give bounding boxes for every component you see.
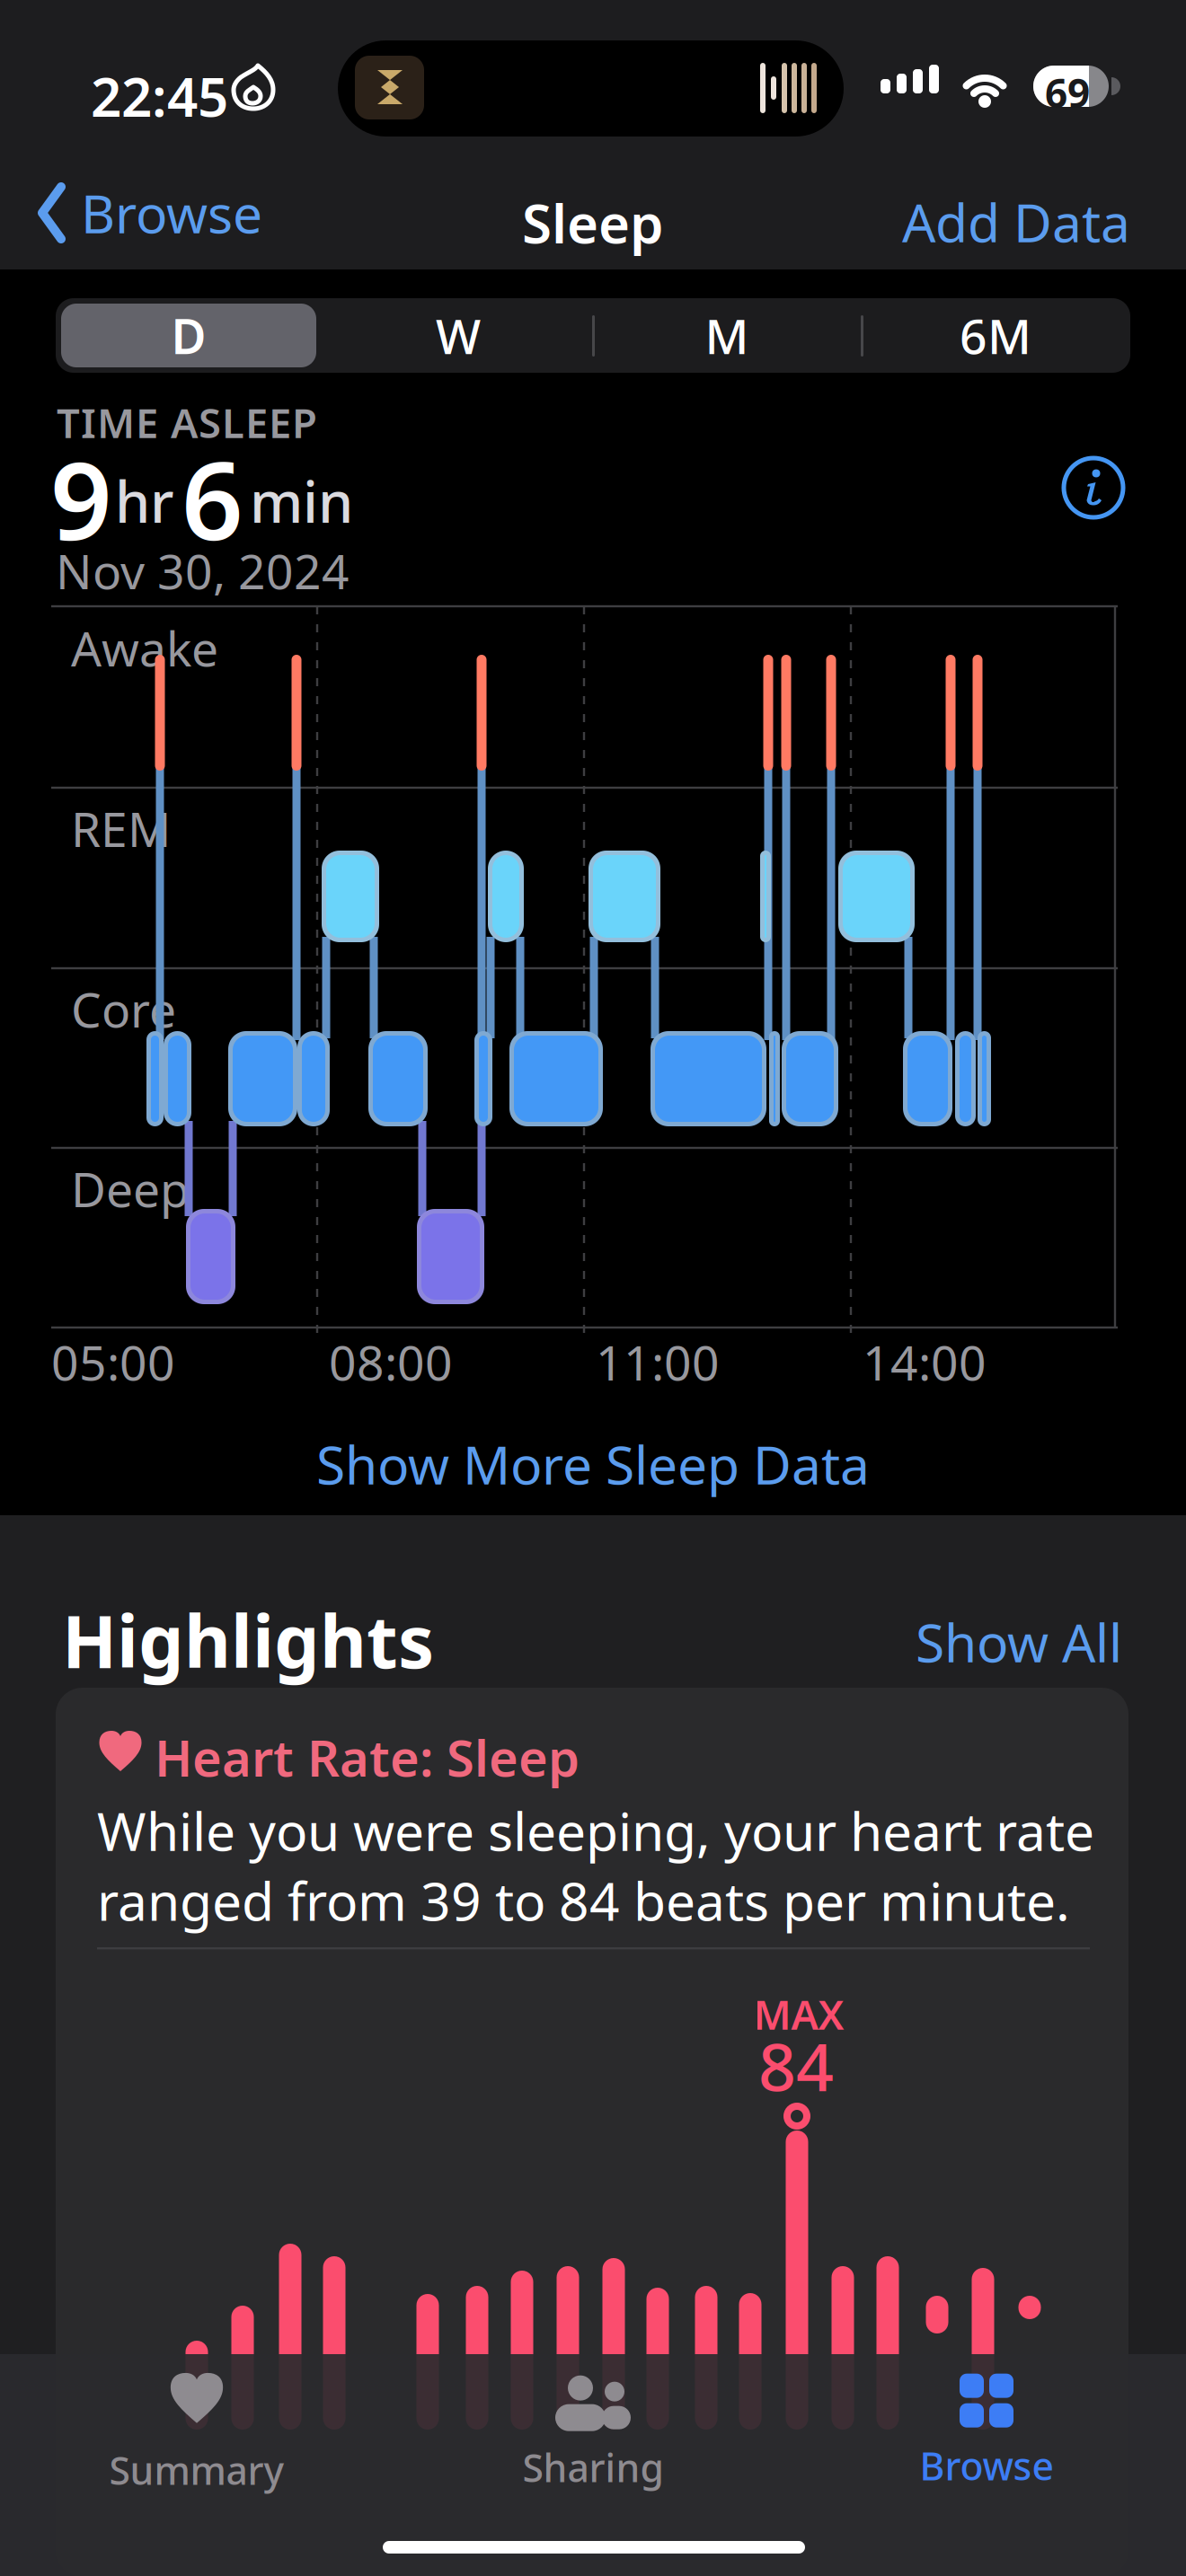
staticText: 6M [960,304,1031,367]
button[interactable]: 6M [865,301,1126,370]
staticText: 14:00 [863,1330,987,1394]
staticText: Show More Sleep Data [316,1429,870,1499]
button[interactable]: Show All [853,1607,1122,1677]
staticText: Add Data [902,187,1130,257]
staticText: Heart Rate: Sleep [155,1724,580,1790]
button[interactable]: Add Data [771,187,1130,257]
staticText: 11:00 [596,1330,720,1394]
staticText: Awake [71,616,218,680]
button[interactable]: Sharing [458,2371,728,2497]
staticText: 69 [1045,66,1090,119]
staticText: Sharing [522,2442,664,2493]
staticText: D [171,304,206,367]
staticText: TIME ASLEEP [57,395,317,449]
staticText: 6 [181,427,243,570]
staticText: 9 [50,427,112,570]
staticText: min [250,463,353,538]
button[interactable]: D [61,304,316,367]
staticText: Summary [109,2445,284,2496]
button[interactable]: Back, Browse [40,181,262,244]
button[interactable]: Browse [852,2369,1121,2495]
button[interactable]: Summary [62,2373,332,2499]
staticText: MAX [753,1987,844,2041]
staticText: Highlights [62,1592,434,1688]
staticText: REM [71,797,171,860]
staticText: Deep [71,1157,190,1220]
staticText: While you were sleeping, your heart rate… [97,1795,1094,1935]
staticText: Nov 30, 2024 [56,539,350,603]
staticText: 08:00 [329,1330,453,1394]
staticText: Show All [916,1607,1122,1677]
button[interactable]: W [328,301,589,370]
staticText: 84 [758,2022,834,2109]
staticText: Browse [81,178,262,248]
button[interactable]: Show More Sleep Data [0,1429,1186,1499]
staticText: W [436,304,481,367]
staticText: 22:45 [91,60,228,132]
staticText: hr [115,463,174,538]
button[interactable]: Heart Rate: Sleep [56,1688,1128,2576]
staticText: M [705,304,749,367]
staticText: Core [71,977,176,1041]
staticText: 05:00 [51,1330,175,1394]
button[interactable]: About Time Asleep [1061,455,1126,520]
staticText: Browse [920,2440,1053,2491]
button[interactable]: M [597,301,857,370]
staticText: Sleep [522,187,664,258]
